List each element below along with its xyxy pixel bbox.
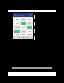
button[interactable]: Card 2	[21, 22, 26, 25]
button[interactable]: Card 2	[21, 18, 26, 21]
button[interactable]: Card 3	[27, 22, 32, 25]
button[interactable]: Card 2	[21, 26, 26, 29]
button[interactable]: Card 1	[14, 18, 20, 21]
button[interactable]: Card 3	[27, 34, 32, 35]
button[interactable]: Card 3	[27, 18, 32, 21]
button[interactable]: App bar	[13, 13, 33, 17]
button[interactable]: Card 1	[14, 30, 20, 33]
button[interactable]: Card 1	[14, 26, 20, 29]
button[interactable]: Card 1	[14, 22, 20, 25]
button[interactable]: Card 3	[27, 26, 32, 29]
button[interactable]: Card 2	[21, 34, 26, 35]
button[interactable]: Card 3	[27, 30, 32, 33]
button[interactable]: Card 2	[21, 30, 26, 33]
button[interactable]: Card 1	[14, 34, 20, 35]
